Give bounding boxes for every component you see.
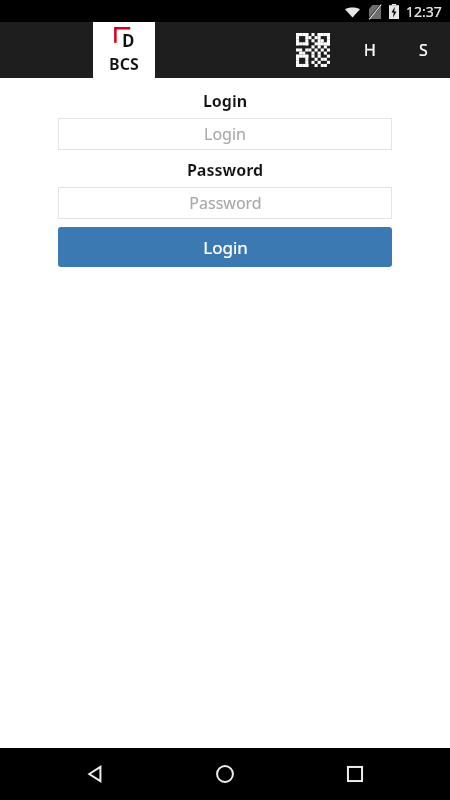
staticText: S bbox=[419, 39, 428, 61]
staticText: Login bbox=[204, 123, 246, 145]
staticText: BCS bbox=[109, 53, 139, 75]
staticText: H bbox=[364, 39, 376, 61]
button[interactable]: Login bbox=[58, 118, 392, 150]
button[interactable]: D bbox=[93, 22, 155, 78]
button[interactable]: H bbox=[344, 22, 396, 78]
button[interactable]: S bbox=[396, 22, 450, 78]
button[interactable]: Password bbox=[58, 187, 392, 219]
button[interactable]: Recent apps bbox=[320, 748, 390, 800]
staticText: D bbox=[122, 29, 135, 52]
staticText: 12:37 bbox=[406, 2, 442, 21]
staticText: Password bbox=[189, 192, 262, 214]
button[interactable]: Back bbox=[60, 748, 130, 800]
button[interactable]: Login bbox=[58, 227, 392, 267]
staticText: Password bbox=[0, 159, 450, 181]
staticText: Login bbox=[0, 90, 450, 112]
staticText: Login bbox=[203, 236, 248, 259]
button[interactable]: Scan QR code bbox=[282, 22, 344, 78]
button[interactable]: Home bbox=[190, 748, 260, 800]
